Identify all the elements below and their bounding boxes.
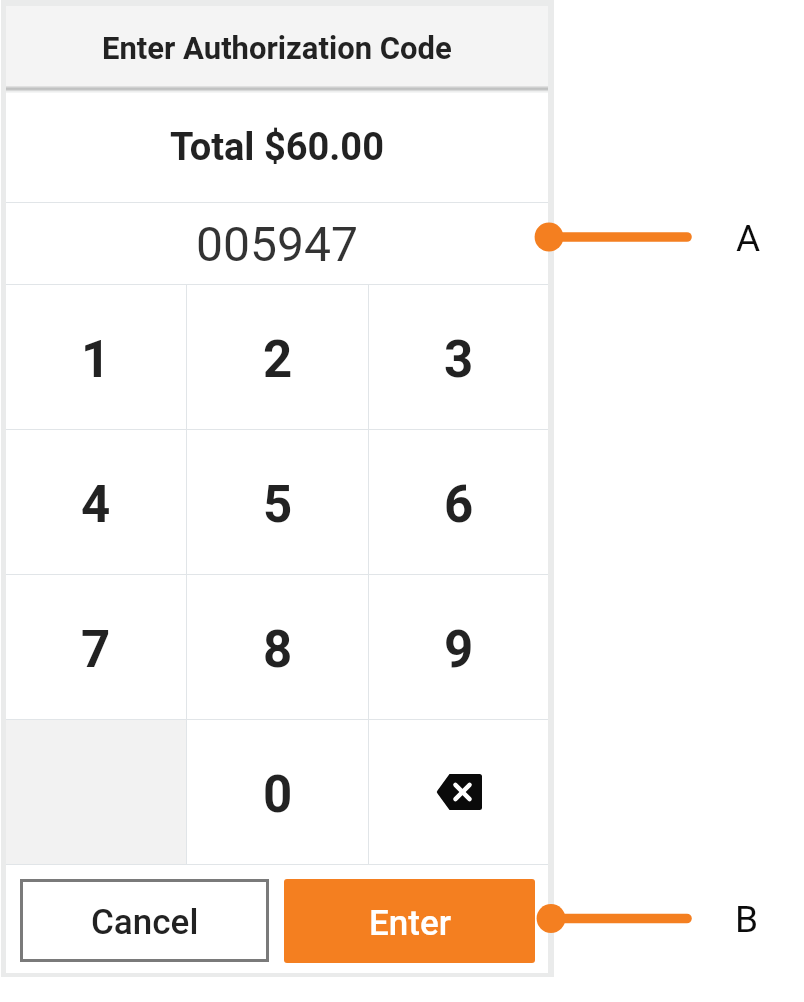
staticText: Enter Authorization Code <box>102 30 452 66</box>
staticText: Enter <box>369 903 451 944</box>
button[interactable]: 8 <box>187 575 368 719</box>
staticText: 6 <box>444 475 474 535</box>
button[interactable]: 4 <box>6 430 186 574</box>
staticText: 005947 <box>196 216 358 272</box>
button[interactable]: 2 <box>187 285 368 429</box>
button[interactable]: Backspace <box>369 720 548 864</box>
staticText: 1 <box>81 330 111 390</box>
staticText: B <box>735 898 759 941</box>
staticText: 7 <box>81 620 111 680</box>
button[interactable]: 1 <box>6 285 186 429</box>
staticText: 0 <box>263 765 293 825</box>
button[interactable]: 3 <box>369 285 548 429</box>
button[interactable]: Cancel <box>20 879 269 962</box>
staticText: Cancel <box>91 902 199 943</box>
staticText: 4 <box>81 475 111 535</box>
button[interactable]: 5 <box>187 430 368 574</box>
button[interactable]: Enter <box>284 879 535 963</box>
button[interactable]: 6 <box>369 430 548 574</box>
button[interactable]: 9 <box>369 575 548 719</box>
staticText: 8 <box>263 620 293 680</box>
staticText: A <box>736 217 761 260</box>
staticText: 3 <box>444 330 474 390</box>
staticText: 9 <box>444 620 474 680</box>
staticText: 5 <box>263 475 293 535</box>
button[interactable]: 0 <box>187 720 368 864</box>
staticText: 2 <box>263 330 293 390</box>
button[interactable]: 7 <box>6 575 186 719</box>
staticText: Total $60.00 <box>170 125 384 170</box>
